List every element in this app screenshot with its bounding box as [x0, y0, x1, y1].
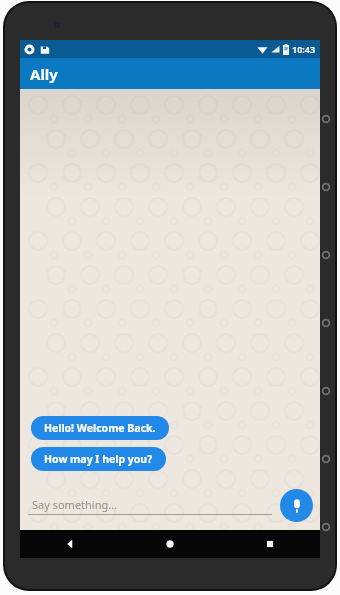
button[interactable]: Voice input: [280, 489, 313, 522]
button[interactable]: Say something...: [28, 497, 272, 515]
button[interactable]: How may I help you?: [31, 447, 166, 471]
staticText: 10:43: [292, 43, 316, 55]
staticText: Say something...: [32, 497, 118, 512]
staticText: Hello! Welcome Back.: [44, 421, 156, 435]
button[interactable]: Recents: [220, 530, 320, 558]
button[interactable]: Hello! Welcome Back.: [31, 416, 169, 440]
staticText: How may I help you?: [44, 452, 153, 466]
button[interactable]: Back: [20, 530, 120, 558]
button[interactable]: Home: [120, 530, 220, 558]
staticText: Ally: [30, 64, 58, 84]
